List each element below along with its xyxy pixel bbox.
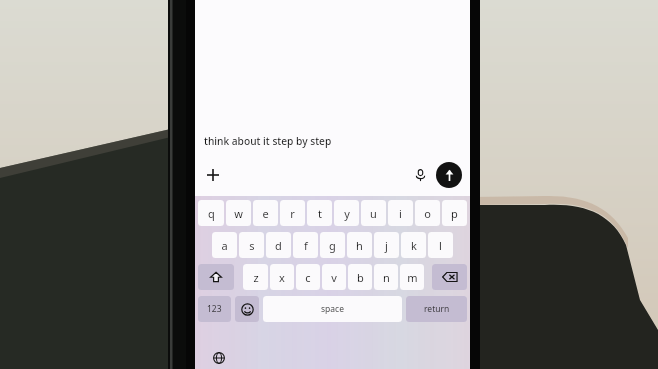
staticText: t [318,206,322,221]
button[interactable]: Shift [198,264,234,290]
staticText: h [356,238,363,253]
staticText: y [344,206,350,221]
button[interactable]: Backspace [432,264,467,290]
staticText: l [439,238,442,253]
button[interactable]: w [226,200,251,226]
staticText: k [411,238,417,253]
button[interactable]: return [406,296,467,322]
button[interactable]: o [415,200,440,226]
button[interactable]: f [293,232,318,258]
staticText: d [275,238,282,253]
button[interactable]: j [374,232,399,258]
staticText: z [253,270,259,285]
button[interactable]: Send [436,162,462,188]
staticText: q [208,206,215,221]
button[interactable]: l [428,232,453,258]
staticText: i [399,206,402,221]
button[interactable]: g [320,232,345,258]
button[interactable]: Add attachment [200,162,226,188]
staticText: u [370,206,377,221]
staticText: return [424,303,450,315]
staticText: x [279,270,285,285]
button[interactable]: i [388,200,413,226]
staticText: c [305,270,311,285]
staticText: n [383,270,390,285]
button[interactable]: Numbers [198,296,231,322]
button[interactable]: n [374,264,398,290]
button[interactable]: a [212,232,237,258]
button[interactable]: s [239,232,264,258]
button[interactable]: q [198,200,224,226]
button[interactable]: Switch keyboard [209,348,229,368]
staticText: v [331,270,337,285]
button[interactable]: t [307,200,332,226]
staticText: e [262,206,269,221]
staticText: w [234,206,243,221]
button[interactable]: Voice input [408,163,432,187]
button[interactable]: r [280,200,305,226]
staticText: p [451,206,458,221]
staticText: r [290,206,295,221]
button[interactable]: v [322,264,346,290]
button[interactable]: k [401,232,426,258]
button[interactable]: h [347,232,372,258]
button[interactable]: c [296,264,320,290]
staticText: g [329,238,336,253]
staticText: a [221,238,228,253]
staticText: m [407,270,418,285]
button[interactable]: m [400,264,424,290]
staticText: space [321,303,344,315]
staticText: think about it step by step [204,134,332,148]
staticText: b [357,270,364,285]
button[interactable]: p [442,200,467,226]
button[interactable]: space [263,296,402,322]
staticText: f [304,238,308,253]
staticText: 123 [207,303,222,315]
button[interactable]: u [361,200,386,226]
button[interactable]: e [253,200,278,226]
button[interactable]: d [266,232,291,258]
staticText: j [385,238,388,253]
button[interactable]: z [243,264,268,290]
button[interactable]: x [270,264,294,290]
button[interactable]: y [334,200,359,226]
button[interactable]: think about it step by step [195,128,470,154]
staticText: o [424,206,431,221]
staticText: s [249,238,255,253]
button[interactable]: Emoji [235,296,259,322]
button[interactable]: b [348,264,372,290]
